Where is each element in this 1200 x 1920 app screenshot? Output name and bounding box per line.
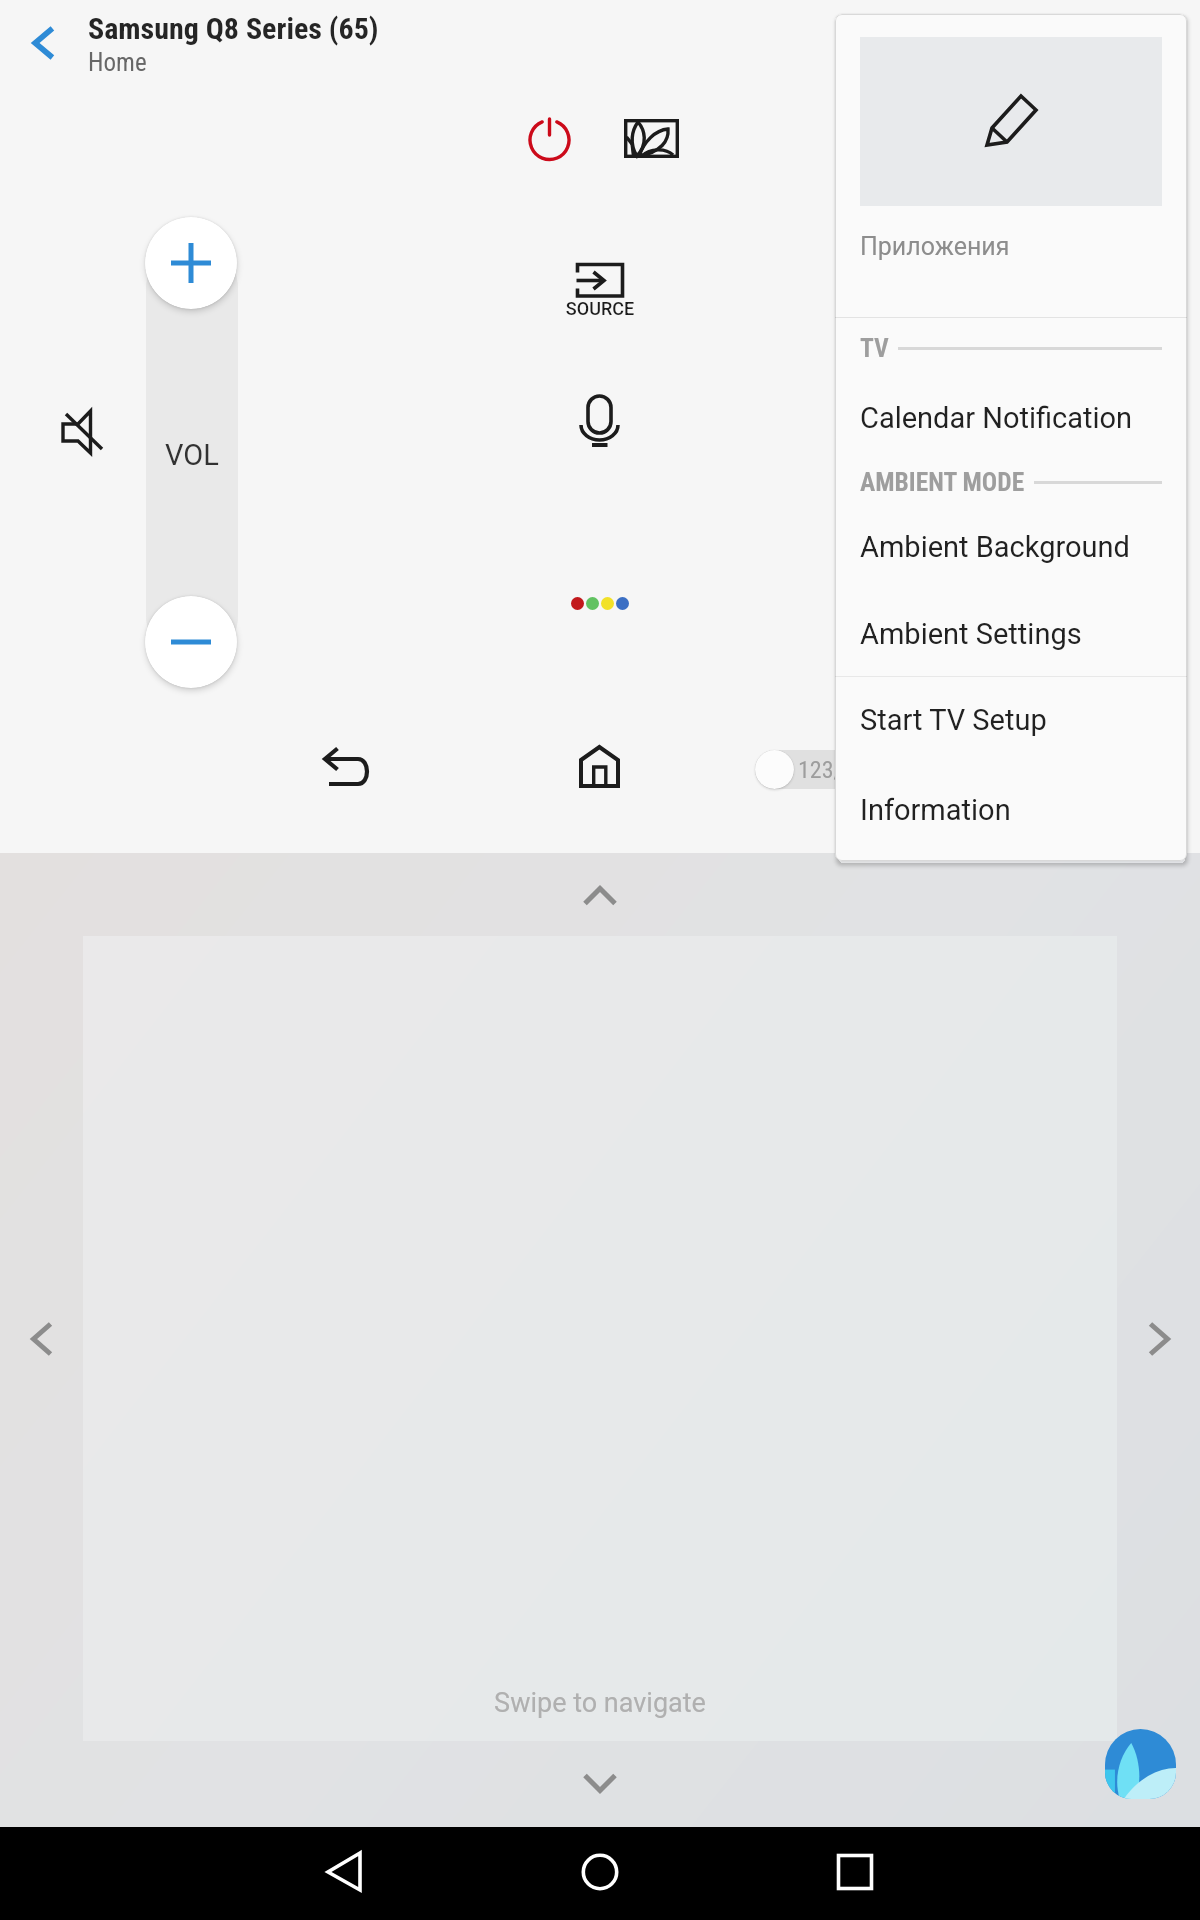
- button[interactable]: Volume up: [145, 217, 237, 309]
- button[interactable]: Color key: [586, 597, 599, 610]
- button[interactable]: Color key: [601, 597, 614, 610]
- button[interactable]: Ambient Background: [835, 511, 1187, 583]
- button[interactable]: Voice: [575, 392, 625, 442]
- button[interactable]: Color key: [571, 597, 584, 610]
- staticText: Swipe to navigate: [400, 1687, 800, 1719]
- button[interactable]: 123/!?: [755, 750, 935, 789]
- button[interactable]: Home: [555, 1828, 645, 1918]
- staticText: Information: [860, 793, 1011, 827]
- button[interactable]: Information: [835, 774, 1187, 846]
- staticText: Ambient Settings: [860, 617, 1082, 651]
- button[interactable]: Calendar Notification: [835, 382, 1187, 454]
- button[interactable]: Power: [515, 106, 585, 176]
- staticText: Приложения: [860, 232, 1010, 261]
- button[interactable]: Collapse: [568, 1751, 632, 1815]
- button[interactable]: Expand: [568, 864, 632, 928]
- button[interactable]: Recents: [810, 1828, 900, 1918]
- button[interactable]: Back: [10, 10, 70, 70]
- button[interactable]: Ambient: [1105, 1729, 1176, 1799]
- button[interactable]: Ambient Settings: [835, 598, 1187, 670]
- staticText: TV: [860, 333, 889, 363]
- button[interactable]: Back: [300, 1828, 390, 1918]
- staticText: AMBIENT MODE: [860, 467, 1025, 497]
- staticText: Samsung Q8 Series (65): [88, 11, 379, 46]
- button[interactable]: Mute: [58, 406, 110, 458]
- button[interactable]: Edit apps: [860, 37, 1162, 206]
- staticText: SOURCE: [500, 298, 700, 319]
- button[interactable]: Color key: [616, 597, 629, 610]
- staticText: Calendar Notification: [860, 401, 1133, 435]
- staticText: Start TV Setup: [860, 703, 1047, 737]
- staticText: VOL: [146, 438, 238, 472]
- button[interactable]: Previous: [10, 1307, 74, 1371]
- staticText: Home: [88, 48, 147, 77]
- button[interactable]: Volume down: [145, 596, 237, 688]
- staticText: Ambient Background: [860, 530, 1130, 564]
- button[interactable]: Return: [318, 742, 376, 800]
- button[interactable]: Source: [566, 255, 636, 325]
- button[interactable]: Home: [575, 741, 625, 791]
- staticText: 123/!?: [798, 756, 859, 784]
- button[interactable]: Start TV Setup: [835, 684, 1187, 756]
- button[interactable]: Next: [1127, 1307, 1191, 1371]
- button[interactable]: Ambient mode: [616, 110, 688, 182]
